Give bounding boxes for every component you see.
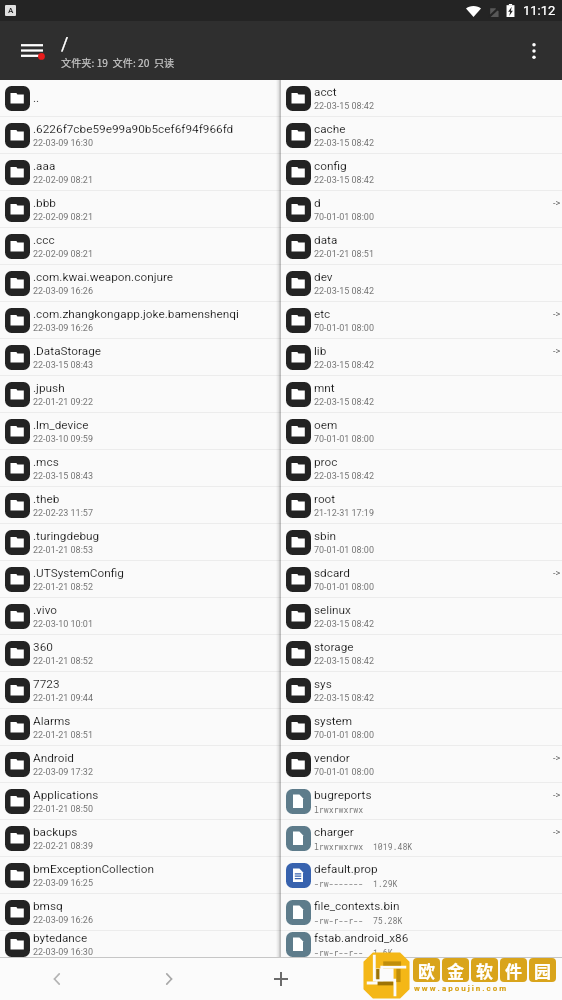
staticText: .6226f7cbe59e99a90b5cef6f94f966fd: [33, 122, 234, 136]
staticText: 金: [447, 958, 464, 982]
staticText: 22-01-21 08:52: [33, 656, 93, 667]
staticText: 22-03-15 08:42: [314, 175, 374, 186]
staticText: 软: [476, 958, 493, 982]
staticText: .aaa: [33, 159, 56, 173]
button[interactable]: .6226f7cbe59e99a90b5cef6f94f966fd: [0, 117, 281, 153]
staticText: 22-02-21 08:39: [33, 841, 93, 852]
button[interactable]: bytedance: [0, 931, 281, 957]
button[interactable]: .theb: [0, 487, 281, 523]
staticText: 70-01-01 08:00: [314, 545, 374, 556]
button[interactable]: oem: [281, 413, 562, 449]
button[interactable]: Forward: [113, 957, 225, 1000]
staticText: .bbb: [33, 196, 56, 210]
staticText: Alarms: [33, 714, 71, 728]
staticText: ->: [553, 346, 561, 357]
button[interactable]: vendor: [281, 746, 562, 782]
button[interactable]: dev: [281, 265, 562, 301]
button[interactable]: charger: [281, 820, 562, 856]
staticText: acct: [314, 85, 337, 99]
staticText: .com.zhangkongapp.joke.bamenshenqi: [33, 307, 239, 321]
staticText: Android: [33, 751, 74, 765]
staticText: .vivo: [33, 603, 58, 617]
button[interactable]: selinux: [281, 598, 562, 634]
staticText: 22-03-09 17:32: [33, 767, 93, 778]
button[interactable]: .turingdebug: [0, 524, 281, 560]
staticText: bmExceptionCollection: [33, 862, 154, 876]
staticText: 22-03-09 16:26: [33, 286, 93, 297]
button[interactable]: Add: [225, 957, 337, 1000]
button[interactable]: .UTSystemConfig: [0, 561, 281, 597]
button[interactable]: .ccc: [0, 228, 281, 264]
button[interactable]: d: [281, 191, 562, 227]
staticText: 22-03-09 16:30: [33, 138, 93, 149]
staticText: charger: [314, 825, 354, 839]
button[interactable]: sdcard: [281, 561, 562, 597]
button[interactable]: Alarms: [0, 709, 281, 745]
button[interactable]: root: [281, 487, 562, 523]
staticText: sbin: [314, 529, 337, 543]
staticText: 22-03-10 09:59: [33, 434, 93, 445]
button[interactable]: config: [281, 154, 562, 190]
button[interactable]: default.prop: [281, 857, 562, 893]
staticText: 22-03-15 08:43: [33, 360, 93, 371]
staticText: config: [314, 159, 347, 173]
staticText: 22-01-21 09:22: [33, 397, 93, 408]
button[interactable]: 360: [0, 635, 281, 671]
button[interactable]: data: [281, 228, 562, 264]
button[interactable]: lib: [281, 339, 562, 375]
button[interactable]: storage: [281, 635, 562, 671]
staticText: 70-01-01 08:00: [314, 323, 374, 334]
staticText: Applications: [33, 788, 99, 802]
staticText: ->: [553, 827, 561, 838]
button[interactable]: .aaa: [0, 154, 281, 190]
button[interactable]: fstab.android_x86: [281, 931, 562, 957]
staticText: -rw------- 1.29K: [314, 878, 398, 889]
staticText: .mcs: [33, 455, 59, 469]
button[interactable]: system: [281, 709, 562, 745]
button[interactable]: Menu: [10, 29, 54, 73]
staticText: 22-03-15 08:42: [314, 360, 374, 371]
staticText: 22-01-21 08:51: [33, 730, 93, 741]
staticText: 70-01-01 08:00: [314, 767, 374, 778]
button[interactable]: bmsq: [0, 894, 281, 930]
button[interactable]: proc: [281, 450, 562, 486]
button[interactable]: backups: [0, 820, 281, 856]
button[interactable]: More options: [514, 31, 554, 71]
button[interactable]: .vivo: [0, 598, 281, 634]
button[interactable]: .com.zhangkongapp.joke.bamenshenqi: [0, 302, 281, 338]
button[interactable]: .DataStorage: [0, 339, 281, 375]
button[interactable]: sys: [281, 672, 562, 708]
staticText: etc: [314, 307, 331, 321]
button[interactable]: .jpush: [0, 376, 281, 412]
staticText: bytedance: [33, 931, 88, 945]
button[interactable]: sbin: [281, 524, 562, 560]
staticText: -rw-r--r-- 1.6K: [314, 947, 393, 957]
button[interactable]: Android: [0, 746, 281, 782]
button[interactable]: file_contexts.bin: [281, 894, 562, 930]
button[interactable]: .mcs: [0, 450, 281, 486]
button[interactable]: .bbb: [0, 191, 281, 227]
staticText: 22-02-23 11:57: [33, 508, 93, 519]
staticText: .UTSystemConfig: [33, 566, 124, 580]
button[interactable]: .com.kwai.weapon.conjure: [0, 265, 281, 301]
button[interactable]: Back: [0, 957, 113, 1000]
button[interactable]: .lm_device: [0, 413, 281, 449]
button[interactable]: ..: [0, 80, 281, 116]
staticText: A: [8, 6, 14, 15]
staticText: /: [61, 33, 69, 54]
button[interactable]: cache: [281, 117, 562, 153]
staticText: d: [314, 196, 321, 210]
staticText: 70-01-01 08:00: [314, 434, 374, 445]
button[interactable]: etc: [281, 302, 562, 338]
button[interactable]: acct: [281, 80, 562, 116]
button[interactable]: bugreports: [281, 783, 562, 819]
staticText: .theb: [33, 492, 60, 506]
staticText: lrwxrwxrwx 1019.48K: [314, 841, 413, 852]
button[interactable]: Applications: [0, 783, 281, 819]
button[interactable]: bmExceptionCollection: [0, 857, 281, 893]
button[interactable]: 7723: [0, 672, 281, 708]
staticText: fstab.android_x86: [314, 931, 409, 945]
button[interactable]: mnt: [281, 376, 562, 412]
staticText: 件: [505, 958, 522, 982]
staticText: .com.kwai.weapon.conjure: [33, 270, 174, 284]
